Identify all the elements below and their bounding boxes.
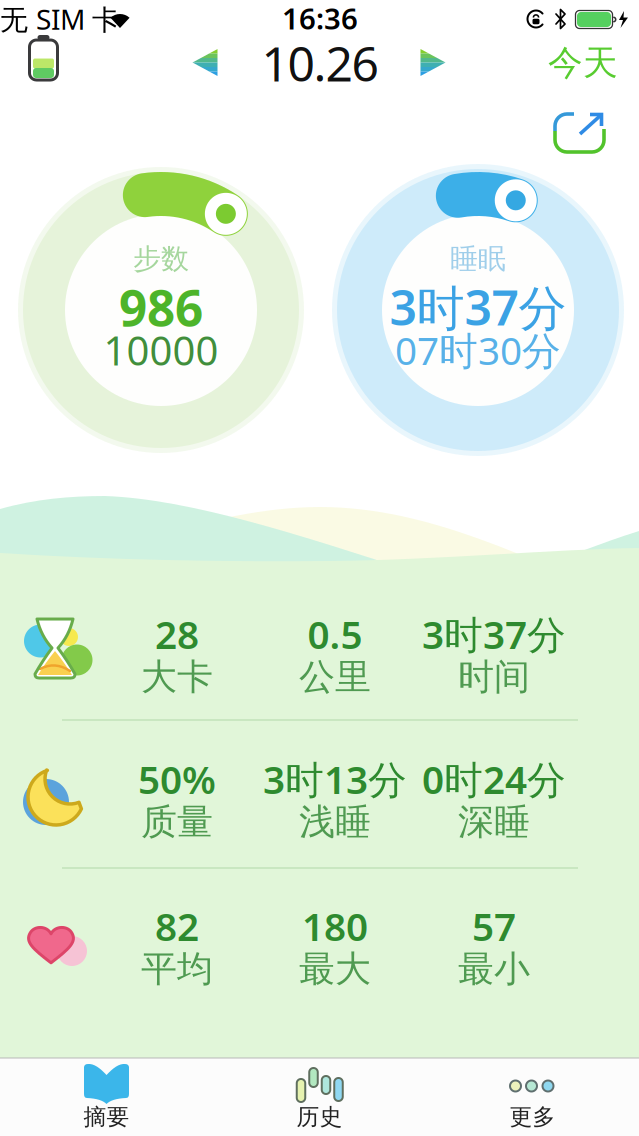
staticText: 16:36: [282, 0, 358, 37]
button[interactable]: 历史: [213, 1058, 426, 1136]
staticText: 180: [302, 900, 368, 952]
staticText: 最小: [458, 947, 530, 991]
staticText: 50%: [138, 753, 216, 805]
button[interactable]: 后一天: [411, 40, 455, 84]
button[interactable]: 今天: [538, 41, 628, 85]
staticText: 0时24分: [422, 753, 566, 805]
staticText: 3时37分: [422, 608, 566, 660]
staticText: 3时37分: [389, 275, 566, 339]
staticText: 更多: [509, 1103, 555, 1131]
staticText: 今天: [548, 42, 618, 84]
staticText: 10.26: [261, 31, 378, 95]
staticText: 3时13分: [263, 753, 407, 805]
staticText: 最大: [299, 947, 371, 991]
staticText: 摘要: [83, 1103, 129, 1131]
button[interactable]: 更多: [426, 1058, 639, 1136]
staticText: 深睡: [458, 800, 530, 844]
staticText: 平均: [141, 947, 213, 991]
staticText: 无 SIM 卡: [0, 0, 120, 38]
staticText: 时间: [458, 655, 530, 699]
staticText: 57: [472, 900, 516, 952]
staticText: 质量: [141, 800, 213, 844]
staticText: 28: [155, 608, 199, 660]
button[interactable]: 前一天: [183, 40, 227, 84]
button[interactable]: 分享: [548, 104, 612, 160]
staticText: 历史: [296, 1103, 342, 1131]
staticText: 公里: [299, 655, 371, 699]
staticText: 睡眠: [450, 242, 506, 276]
staticText: 步数: [133, 242, 189, 276]
staticText: 10000: [103, 323, 218, 376]
staticText: 大卡: [141, 655, 213, 699]
staticText: 0.5: [307, 608, 362, 660]
staticText: 82: [155, 900, 199, 952]
staticText: 07时30分: [395, 324, 561, 376]
staticText: 浅睡: [299, 800, 371, 844]
button[interactable]: 摘要: [0, 1058, 213, 1136]
staticText: 986: [119, 274, 203, 340]
